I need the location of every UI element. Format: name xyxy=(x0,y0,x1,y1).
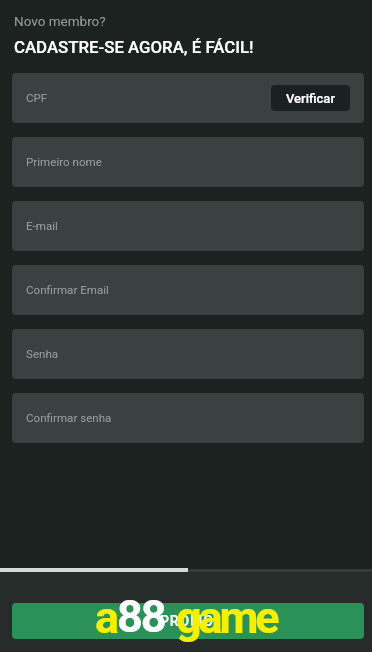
staticText: a xyxy=(95,591,120,644)
staticText: Senha xyxy=(26,347,59,361)
button[interactable]: E-mail xyxy=(12,201,364,251)
button[interactable]: Confirmar Email xyxy=(12,265,364,315)
staticText: E-mail xyxy=(26,219,58,233)
button[interactable]: Senha xyxy=(12,329,364,379)
staticText: Confirmar Email xyxy=(26,283,109,297)
staticText: Confirmar senha xyxy=(26,411,112,425)
staticText: Novo membro? xyxy=(14,13,106,29)
staticText: CPF xyxy=(26,91,48,105)
staticText: 88 xyxy=(117,590,165,643)
button[interactable]: Confirmar senha xyxy=(12,393,364,443)
button[interactable]: Verificar xyxy=(271,85,350,111)
staticText: CADASTRE-SE AGORA, É FÁCIL! xyxy=(14,37,254,57)
staticText: Verificar xyxy=(286,91,335,106)
button[interactable]: a88 promo game banner xyxy=(12,603,364,639)
button[interactable]: Primeiro nome xyxy=(12,137,364,187)
staticText: game xyxy=(176,591,277,644)
button[interactable]: CPF xyxy=(12,73,364,123)
staticText: Primeiro nome xyxy=(26,155,102,169)
staticText: PROMO xyxy=(160,613,214,629)
